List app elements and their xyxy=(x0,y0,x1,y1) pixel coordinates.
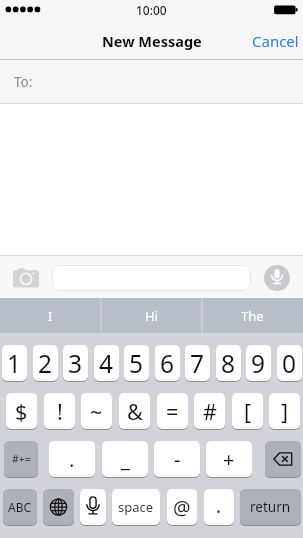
staticText: 1 xyxy=(7,347,22,380)
button[interactable]: Cancel xyxy=(237,30,299,52)
button[interactable]: . xyxy=(49,441,95,477)
staticText: space xyxy=(118,498,154,516)
button[interactable]: & xyxy=(119,393,150,429)
staticText: ] xyxy=(281,397,289,426)
button[interactable] xyxy=(80,489,106,525)
staticText: & xyxy=(127,397,143,426)
button[interactable]: + xyxy=(206,441,252,477)
button[interactable]: 6 xyxy=(155,345,180,381)
staticText: 2 xyxy=(38,347,53,380)
staticText: Hi xyxy=(145,307,158,325)
staticText: 10:00 xyxy=(136,2,167,18)
button[interactable] xyxy=(52,265,251,291)
button[interactable]: . xyxy=(204,489,234,525)
button[interactable]: 2 xyxy=(33,345,58,381)
button[interactable]: @ xyxy=(167,489,197,525)
staticText: The xyxy=(241,307,264,325)
staticText: 4 xyxy=(99,347,114,380)
staticText: I xyxy=(48,307,53,325)
staticText: Cancel xyxy=(252,31,299,51)
staticText: # xyxy=(203,397,217,426)
staticText: 9 xyxy=(251,347,266,380)
button[interactable]: Hi xyxy=(101,298,201,333)
staticText: ABC xyxy=(8,499,32,515)
staticText: ~ xyxy=(90,397,103,426)
button[interactable]: The xyxy=(202,298,303,333)
button[interactable]: = xyxy=(157,393,188,429)
staticText: ! xyxy=(57,397,63,426)
button[interactable]: [ xyxy=(232,393,263,429)
staticText: 7 xyxy=(190,347,205,380)
button[interactable]: ~ xyxy=(81,393,112,429)
button[interactable]: 4 xyxy=(94,345,119,381)
staticText: . xyxy=(216,493,222,519)
button[interactable] xyxy=(0,60,303,103)
button[interactable]: 5 xyxy=(124,345,149,381)
button[interactable]: 3 xyxy=(63,345,88,381)
button[interactable]: ! xyxy=(44,393,75,429)
staticText: New Message xyxy=(102,31,202,51)
staticText: . xyxy=(69,446,75,473)
staticText: 0 xyxy=(282,347,297,380)
button[interactable]: $ xyxy=(6,393,37,429)
staticText: To: xyxy=(14,73,33,91)
button[interactable]: #+= xyxy=(4,441,38,477)
button[interactable]: 0 xyxy=(277,345,302,381)
button[interactable] xyxy=(43,489,74,525)
button[interactable]: 8 xyxy=(216,345,241,381)
button[interactable]: space xyxy=(112,489,160,525)
staticText: - xyxy=(174,446,181,473)
staticText: = xyxy=(166,397,179,426)
staticText: return xyxy=(250,498,291,516)
button[interactable]: ] xyxy=(269,393,300,429)
button[interactable]: 9 xyxy=(246,345,271,381)
button[interactable]: - xyxy=(154,441,200,477)
staticText: @ xyxy=(173,494,191,521)
staticText: 8 xyxy=(221,347,236,380)
button[interactable]: return xyxy=(240,489,301,525)
button[interactable]: 7 xyxy=(185,345,210,381)
button[interactable]: # xyxy=(194,393,225,429)
staticText: 6 xyxy=(160,347,175,380)
button[interactable]: _ xyxy=(102,441,148,477)
button[interactable]: I xyxy=(0,298,100,333)
button[interactable]: ABC xyxy=(3,489,37,525)
staticText: 5 xyxy=(129,347,144,380)
staticText: #+= xyxy=(12,452,31,466)
button[interactable]: 1 xyxy=(2,345,27,381)
staticText: [ xyxy=(244,397,252,426)
staticText: 3 xyxy=(68,347,83,380)
staticText: $ xyxy=(15,397,28,426)
staticText: + xyxy=(223,446,235,473)
staticText: _ xyxy=(121,446,130,473)
button[interactable] xyxy=(12,266,40,290)
button[interactable] xyxy=(264,265,290,291)
button[interactable] xyxy=(265,441,301,477)
